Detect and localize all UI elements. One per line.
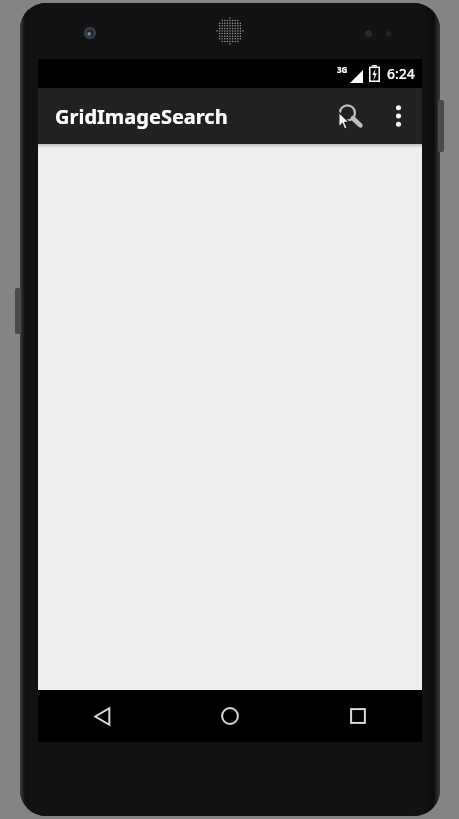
button[interactable]: More options — [374, 92, 422, 140]
button[interactable]: Home — [166, 690, 294, 742]
button[interactable]: Search — [326, 92, 374, 140]
staticText: 3G — [337, 64, 348, 75]
staticText: GridImageSearch — [55, 103, 228, 130]
button[interactable]: Recent apps — [294, 690, 422, 742]
button[interactable]: Back — [38, 690, 166, 742]
staticText: 6:24 — [387, 64, 415, 83]
